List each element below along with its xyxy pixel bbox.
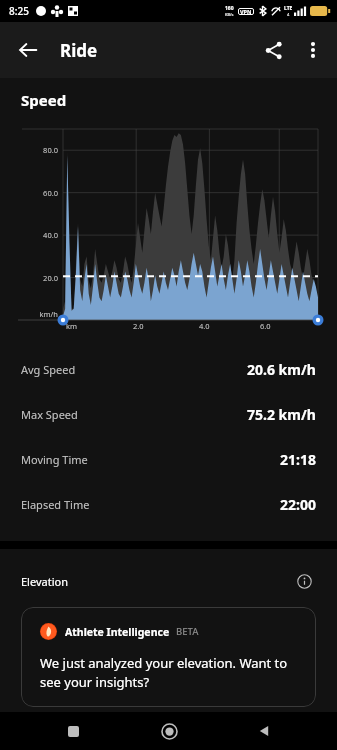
- staticText: Speed: [21, 90, 67, 110]
- button[interactable]: More options: [293, 30, 333, 70]
- staticText: 75.2 km/h: [247, 405, 316, 424]
- staticText: 8:25: [9, 4, 29, 18]
- staticText: Avg Speed: [21, 362, 76, 377]
- button[interactable]: Home: [154, 716, 184, 746]
- staticText: km: [66, 321, 78, 331]
- staticText: 160: [225, 5, 234, 12]
- staticText: KB/s: [225, 12, 234, 17]
- staticText: BETA: [176, 625, 199, 638]
- staticText: Moving Time: [21, 452, 88, 467]
- staticText: 21:18: [280, 450, 316, 469]
- staticText: 4: [287, 12, 290, 17]
- staticText: We just analyzed your elevation. Want to…: [40, 654, 297, 691]
- staticText: 20.6 km/h: [247, 360, 316, 379]
- staticText: 4.0: [199, 321, 210, 331]
- staticText: VPN: [240, 8, 252, 15]
- staticText: Max Speed: [21, 407, 78, 422]
- staticText: 6.0: [260, 321, 271, 331]
- staticText: km/h: [20, 309, 58, 319]
- staticText: 2.0: [133, 321, 144, 331]
- staticText: Athlete Intelligence: [65, 625, 170, 639]
- button[interactable]: Moving Time: [0, 437, 337, 482]
- button[interactable]: Avg Speed: [0, 347, 337, 392]
- button[interactable]: Back: [249, 716, 279, 746]
- staticText: 60.0: [20, 188, 58, 198]
- staticText: 80.0: [20, 145, 58, 155]
- staticText: LTE: [284, 5, 293, 12]
- staticText: Elapsed Time: [21, 497, 90, 512]
- button[interactable]: Back: [8, 30, 48, 70]
- button[interactable]: Elevation info: [292, 569, 316, 593]
- button[interactable]: Recents: [58, 716, 88, 746]
- staticText: Elevation: [21, 574, 68, 589]
- staticText: 20.0: [20, 273, 58, 283]
- staticText: 22:00: [280, 495, 316, 514]
- button[interactable]: Max Speed: [0, 392, 337, 437]
- button[interactable]: Athlete Intelligence: [21, 607, 316, 707]
- button[interactable]: Elapsed Time: [0, 482, 337, 527]
- button[interactable]: Share: [253, 30, 293, 70]
- staticText: Ride: [60, 39, 98, 62]
- staticText: 40.0: [20, 230, 58, 240]
